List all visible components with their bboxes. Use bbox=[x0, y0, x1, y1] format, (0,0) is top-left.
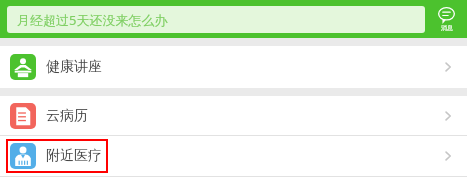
button[interactable]: 云病历 bbox=[0, 96, 467, 135]
button[interactable]: 消息 bbox=[425, 0, 467, 38]
button[interactable]: 月经超过5天还没来怎么办 bbox=[7, 6, 425, 33]
staticText: 月经超过5天还没来怎么办 bbox=[17, 11, 168, 29]
button[interactable]: 附近医疗 bbox=[0, 136, 467, 176]
button[interactable]: 健康讲座 bbox=[0, 46, 467, 88]
staticText: 附近医疗 bbox=[46, 147, 102, 165]
staticText: 健康讲座 bbox=[46, 58, 102, 76]
staticText: 消息 bbox=[441, 24, 453, 32]
staticText: 云病历 bbox=[46, 107, 88, 125]
